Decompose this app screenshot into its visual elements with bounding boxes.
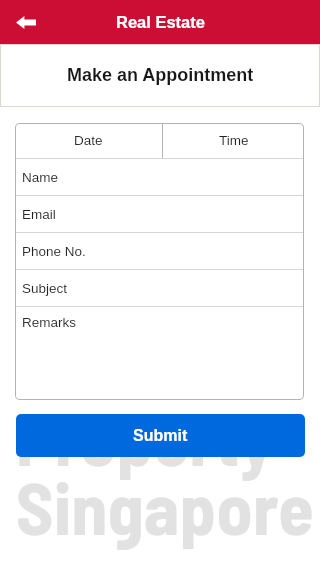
staticText: Property <box>16 394 274 480</box>
button[interactable]: Date <box>15 123 162 158</box>
button[interactable]: Subject <box>15 270 304 306</box>
button[interactable]: Name <box>15 159 304 195</box>
staticText: Submit <box>133 427 188 445</box>
staticText: Make an Appointment <box>67 65 254 85</box>
button[interactable]: Back <box>0 0 52 44</box>
staticText: Email <box>22 207 56 222</box>
staticText: Subject <box>22 281 68 296</box>
staticText: Real Estate <box>116 13 205 31</box>
staticText: Singapore <box>16 463 315 549</box>
button[interactable]: Time <box>163 123 304 158</box>
staticText: Time <box>219 133 249 148</box>
button[interactable]: Email <box>15 196 304 232</box>
staticText: Name <box>22 170 59 185</box>
button[interactable]: Remarks <box>15 307 304 400</box>
button[interactable]: Phone No. <box>15 233 304 269</box>
staticText: Date <box>74 133 103 148</box>
button[interactable]: Submit <box>16 414 305 457</box>
staticText: Phone No. <box>22 244 86 259</box>
staticText: Remarks <box>22 315 77 330</box>
